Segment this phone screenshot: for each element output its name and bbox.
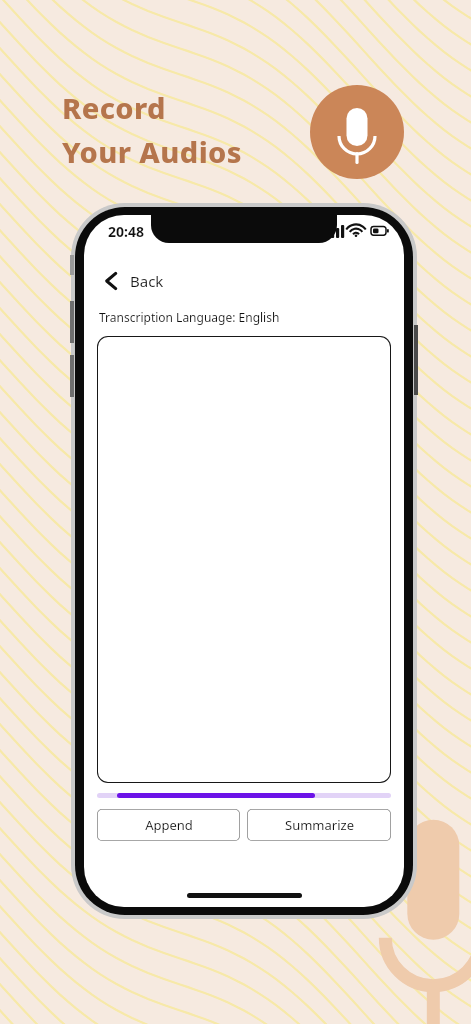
staticText: Append — [145, 816, 193, 834]
staticText: Your Audios — [62, 132, 242, 171]
staticText: 20:48 — [108, 222, 144, 241]
button[interactable]: Summarize — [247, 809, 391, 841]
staticText: Record — [62, 88, 166, 127]
staticText: Transcription Language: English — [99, 309, 280, 325]
staticText: Summarize — [285, 816, 354, 834]
staticText: Back — [130, 271, 164, 291]
button[interactable] — [97, 336, 391, 783]
button[interactable]: Record audio — [310, 85, 404, 179]
button[interactable]: Append — [97, 809, 240, 841]
button[interactable]: Back — [98, 267, 170, 295]
